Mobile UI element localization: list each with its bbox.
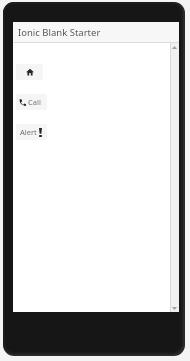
staticText: Ionic Blank Starter [18, 26, 101, 39]
button[interactable]: Call [16, 94, 47, 110]
button[interactable]: Home [16, 64, 43, 80]
staticText: Call [28, 97, 41, 107]
button[interactable]: Scroll down [170, 304, 179, 312]
other: Vertical scroll bar [170, 43, 179, 312]
button[interactable]: Alert [16, 124, 47, 140]
button[interactable]: Scroll up [170, 43, 179, 51]
staticText: Alert [20, 127, 37, 137]
